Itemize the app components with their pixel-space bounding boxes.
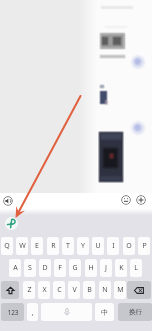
button[interactable]: T <box>62 237 74 255</box>
button[interactable]: Voice input <box>3 196 13 206</box>
staticText: W <box>19 241 26 251</box>
button[interactable]: Space <box>41 303 92 321</box>
button[interactable]: F <box>54 259 66 277</box>
staticText: C <box>57 285 62 295</box>
button[interactable]: I <box>107 237 119 255</box>
button[interactable]: W <box>16 237 28 255</box>
button[interactable]: G <box>69 259 81 277</box>
staticText: X <box>42 285 47 295</box>
staticText: S <box>28 263 32 273</box>
button[interactable]: O <box>123 237 135 255</box>
button[interactable]: , <box>27 303 38 321</box>
staticText: 中 <box>101 308 108 317</box>
button[interactable]: Q <box>1 237 13 255</box>
button[interactable]: J <box>100 259 112 277</box>
button[interactable]: Backspace <box>127 281 151 299</box>
button[interactable]: Z <box>23 281 35 299</box>
button[interactable]: H <box>85 259 97 277</box>
staticText: U <box>95 241 101 251</box>
staticText: 换行 <box>129 308 142 316</box>
staticText: , <box>31 307 34 317</box>
staticText: M <box>117 285 124 295</box>
button[interactable]: X <box>38 281 50 299</box>
button[interactable]: Shift <box>1 281 19 299</box>
staticText: B <box>87 285 92 295</box>
button[interactable]: More options <box>136 195 146 205</box>
staticText: D <box>42 263 48 273</box>
staticText: I <box>112 241 115 251</box>
staticText: P <box>142 241 147 251</box>
staticText: O <box>126 241 132 251</box>
staticText: G <box>72 263 78 273</box>
button[interactable]: Emoji <box>121 195 131 205</box>
button[interactable]: A <box>9 259 21 277</box>
staticText: Y <box>81 241 85 251</box>
button[interactable]: E <box>31 237 43 255</box>
button[interactable]: R <box>47 237 59 255</box>
staticText: J <box>105 263 107 273</box>
staticText: Q <box>4 241 10 251</box>
staticText: E <box>35 241 39 251</box>
button[interactable]: V <box>68 281 80 299</box>
button[interactable]: Sticker keyboard <box>5 217 18 230</box>
staticText: L <box>134 263 138 273</box>
staticText: T <box>66 241 70 251</box>
button[interactable]: 换行 <box>118 303 152 321</box>
button[interactable]: P <box>138 237 150 255</box>
button[interactable]: 中 <box>95 303 114 321</box>
staticText: 123 <box>7 308 19 317</box>
button[interactable]: K <box>115 259 127 277</box>
button[interactable]: S <box>24 259 36 277</box>
button[interactable]: D <box>39 259 51 277</box>
staticText: K <box>119 263 124 273</box>
button[interactable]: M <box>114 281 126 299</box>
button[interactable]: U <box>92 237 104 255</box>
staticText: V <box>72 285 77 295</box>
button[interactable]: Y <box>77 237 89 255</box>
staticText: H <box>88 263 94 273</box>
staticText: Z <box>27 285 32 295</box>
staticText: R <box>51 241 56 251</box>
button[interactable]: 123 <box>1 303 24 321</box>
button[interactable]: L <box>130 259 142 277</box>
staticText: F <box>58 263 62 273</box>
button[interactable]: N <box>99 281 111 299</box>
button[interactable]: C <box>53 281 65 299</box>
button[interactable] <box>16 195 117 208</box>
staticText: N <box>102 285 108 295</box>
staticText: A <box>13 263 18 273</box>
button[interactable]: B <box>83 281 95 299</box>
